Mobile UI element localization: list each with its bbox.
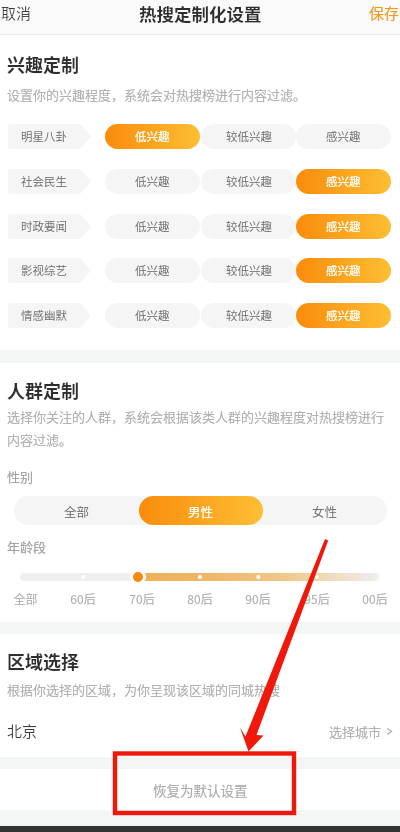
staticText: 明星八卦	[21, 128, 67, 145]
staticText: 北京	[7, 720, 38, 742]
staticText: 80后	[187, 590, 213, 607]
button[interactable]: 低兴趣	[105, 124, 200, 149]
staticText: 兴趣定制	[7, 51, 79, 77]
staticText: 根据你选择的区域，为你呈现该区域的同城热搜	[7, 680, 281, 699]
staticText: 取消	[1, 2, 32, 24]
staticText: 低兴趣	[135, 218, 170, 235]
button[interactable]: 较低兴趣	[201, 169, 296, 194]
staticText: 较低兴趣	[226, 128, 272, 145]
staticText: 低兴趣	[135, 128, 170, 145]
staticText: 人群定制	[7, 377, 79, 403]
button[interactable]: 感兴趣	[296, 124, 391, 149]
button[interactable]: 感兴趣	[296, 303, 391, 328]
staticText: 全部	[64, 502, 90, 520]
button[interactable]: 较低兴趣	[201, 303, 296, 328]
staticText: 感兴趣	[326, 262, 361, 279]
button[interactable]: 低兴趣	[105, 214, 200, 239]
staticText: 低兴趣	[135, 262, 170, 279]
staticText: 感兴趣	[326, 173, 361, 190]
staticText: 70后	[129, 590, 155, 607]
button[interactable]: 较低兴趣	[201, 258, 296, 283]
staticText: 90后	[245, 590, 271, 607]
staticText: 男性	[188, 502, 214, 520]
staticText: 恢复为默认设置	[153, 780, 248, 800]
staticText: 60后	[70, 590, 96, 607]
staticText: 较低兴趣	[226, 307, 272, 324]
staticText: 感兴趣	[326, 307, 361, 324]
button[interactable]: 较低兴趣	[201, 124, 296, 149]
staticText: 热搜定制化设置	[139, 1, 262, 26]
button[interactable]: 情感幽默	[8, 303, 91, 328]
staticText: 全部	[13, 590, 38, 607]
button[interactable]: 女性	[263, 496, 387, 525]
staticText: 时政要闻	[21, 218, 67, 235]
button[interactable]: 感兴趣	[296, 214, 391, 239]
staticText: 保存	[369, 2, 400, 24]
button[interactable]: 男性	[139, 496, 263, 525]
staticText: 年龄段	[7, 537, 47, 556]
button[interactable]: 保存	[369, 0, 400, 26]
staticText: 影视综艺	[21, 262, 67, 279]
staticText: 00后	[362, 590, 388, 607]
staticText: 设置你的兴趣程度，系统会对热搜榜进行内容过滤。	[7, 85, 307, 104]
button[interactable]: 北京	[0, 709, 400, 753]
button[interactable]: 感兴趣	[296, 258, 391, 283]
staticText: 社会民生	[21, 173, 67, 190]
button[interactable]: 感兴趣	[296, 169, 391, 194]
staticText: 较低兴趣	[226, 218, 272, 235]
staticText: 95后	[304, 590, 330, 607]
staticText: 低兴趣	[135, 173, 170, 190]
staticText: 区域选择	[7, 648, 79, 674]
staticText: 感兴趣	[326, 128, 361, 145]
button[interactable]: 时政要闻	[8, 214, 91, 239]
button[interactable]: 取消	[0, 0, 40, 26]
staticText: 较低兴趣	[226, 262, 272, 279]
button[interactable]: 低兴趣	[105, 258, 200, 283]
staticText: 情感幽默	[21, 307, 67, 324]
staticText: 女性	[312, 502, 338, 520]
button[interactable]: 较低兴趣	[201, 214, 296, 239]
button[interactable]: 低兴趣	[105, 169, 200, 194]
staticText: 选择你关注的人群，系统会根据该类人群的兴趣程度对热搜榜进行内容过滤。	[7, 407, 392, 449]
button[interactable]: 低兴趣	[105, 303, 200, 328]
staticText: 较低兴趣	[226, 173, 272, 190]
staticText: 选择城市	[329, 722, 382, 741]
button[interactable]: 明星八卦	[8, 124, 91, 149]
staticText: 低兴趣	[135, 307, 170, 324]
button[interactable]: 恢复为默认设置	[0, 769, 400, 810]
button[interactable]: 影视综艺	[8, 258, 91, 283]
staticText: 感兴趣	[326, 218, 361, 235]
button[interactable]: 社会民生	[8, 169, 91, 194]
staticText: 性别	[7, 467, 34, 486]
button[interactable]: 全部	[14, 496, 139, 525]
